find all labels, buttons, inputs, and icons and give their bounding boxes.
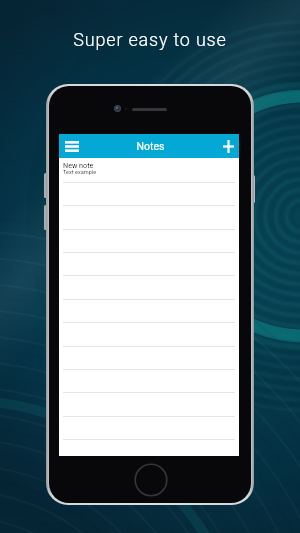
- button[interactable]: [59, 230, 239, 253]
- button[interactable]: Add note: [218, 134, 239, 158]
- staticText: Notes: [84, 140, 217, 152]
- button[interactable]: New note: [59, 158, 239, 183]
- staticText: Super easy to use: [0, 29, 300, 50]
- button[interactable]: [59, 370, 239, 393]
- button[interactable]: [59, 300, 239, 323]
- button[interactable]: [59, 417, 239, 440]
- button[interactable]: [59, 183, 239, 206]
- staticText: New note: [63, 161, 94, 169]
- button[interactable]: [59, 394, 239, 417]
- button[interactable]: [59, 277, 239, 300]
- button[interactable]: Menu: [59, 134, 85, 158]
- button[interactable]: [59, 347, 239, 370]
- staticText: Text example: [63, 169, 97, 176]
- button[interactable]: [59, 253, 239, 276]
